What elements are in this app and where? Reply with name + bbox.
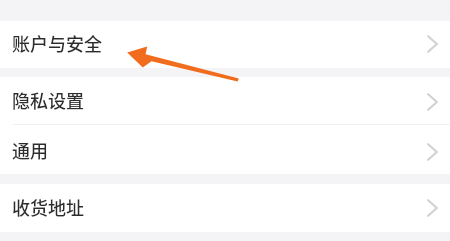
button[interactable]: 账户与安全 <box>0 21 450 68</box>
staticText: 通用 <box>12 137 48 163</box>
staticText: 隐私设置 <box>12 87 84 113</box>
other: Open 隐私设置 <box>427 93 438 111</box>
button[interactable]: 隐私设置 <box>0 77 450 124</box>
staticText: 账户与安全 <box>12 30 102 56</box>
button[interactable]: 通用 <box>0 125 450 174</box>
other: Open 账户与安全 <box>427 35 438 53</box>
other: Open 通用 <box>427 143 438 161</box>
staticText: 收货地址 <box>12 194 84 220</box>
other: Open 收货地址 <box>427 199 438 217</box>
button[interactable]: 收货地址 <box>0 184 450 232</box>
